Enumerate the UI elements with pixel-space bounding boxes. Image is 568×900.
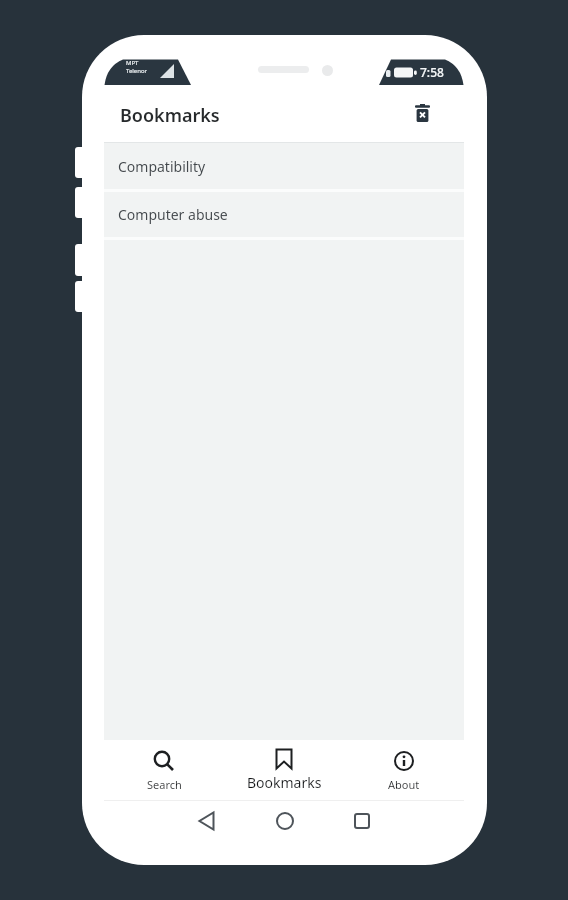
staticText: 7:58	[420, 64, 444, 80]
staticText: MPT	[126, 59, 139, 67]
button[interactable]: Bookmarks	[224, 740, 344, 800]
button[interactable]	[398, 89, 446, 137]
button[interactable]: Compatibility	[104, 143, 464, 189]
staticText: Search	[147, 777, 182, 792]
button[interactable]: About	[344, 740, 464, 800]
button[interactable]: Search	[104, 740, 224, 800]
button[interactable]	[323, 800, 400, 842]
button[interactable]: Computer abuse	[104, 192, 464, 237]
staticText: Compatibility	[118, 157, 206, 176]
staticText: Bookmarks	[247, 773, 322, 792]
staticText: Computer abuse	[118, 205, 228, 224]
button[interactable]	[169, 800, 246, 842]
staticText: Bookmarks	[120, 103, 220, 128]
staticText: Telenor	[126, 67, 148, 75]
staticText: About	[388, 777, 420, 792]
button[interactable]	[246, 800, 323, 842]
